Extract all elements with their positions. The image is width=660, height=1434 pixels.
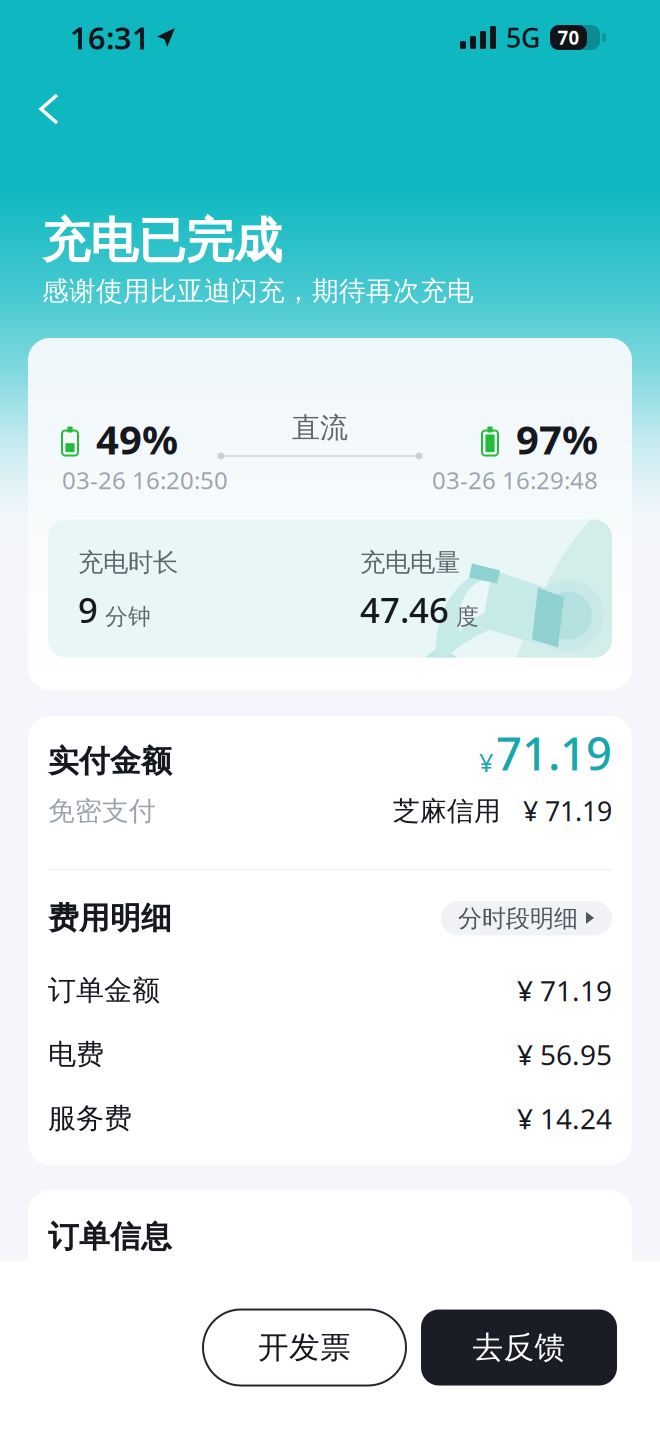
staticText: 开发票 xyxy=(258,1329,351,1366)
staticText: 5G xyxy=(506,20,540,55)
staticText: 服务费 xyxy=(48,1101,132,1136)
staticText: 感谢使用比亚迪闪充，期待再次充电 xyxy=(42,275,474,307)
staticText: 9 xyxy=(78,586,98,632)
staticText: 97% xyxy=(516,412,598,465)
staticText: ¥ 14.24 xyxy=(517,1100,612,1137)
staticText: ¥ xyxy=(479,745,493,779)
staticText: 费用明细 xyxy=(48,900,172,937)
staticText: 47.46 xyxy=(360,586,449,632)
staticText: 71.19 xyxy=(496,723,612,783)
button[interactable]: 去反馈 xyxy=(421,1309,617,1385)
staticText: 订单金额 xyxy=(48,973,160,1008)
staticText: 直流 xyxy=(292,411,348,445)
staticText: 分钟 xyxy=(105,603,151,630)
staticText: 分时段明细 xyxy=(458,904,578,933)
staticText: 订单信息 xyxy=(48,1218,172,1256)
button[interactable]: 开发票 xyxy=(203,1309,406,1385)
staticText: 充电已完成 xyxy=(42,211,282,270)
button[interactable]: 分时段明细 xyxy=(441,901,612,935)
staticText: 49% xyxy=(96,412,178,465)
staticText: ¥ 56.95 xyxy=(517,1036,612,1073)
staticText: 03-26 16:29:48 xyxy=(432,464,598,496)
staticText: 去反馈 xyxy=(472,1329,565,1366)
button[interactable]: Back xyxy=(38,78,100,140)
staticText: 03-26 16:20:50 xyxy=(62,464,228,496)
staticText: ¥ 71.19 xyxy=(517,972,612,1009)
staticText: 电费 xyxy=(48,1037,104,1072)
staticText: 芝麻信用 xyxy=(393,795,501,827)
staticText: 16:31 xyxy=(70,17,150,58)
staticText: 充电时长 xyxy=(78,547,178,578)
staticText: 度 xyxy=(456,603,479,630)
staticText: 免密支付 xyxy=(48,795,156,827)
staticText: 实付金额 xyxy=(48,742,172,780)
staticText: ¥ 71.19 xyxy=(523,793,612,829)
staticText: 充电电量 xyxy=(360,547,460,578)
staticText: 70 xyxy=(557,25,579,50)
